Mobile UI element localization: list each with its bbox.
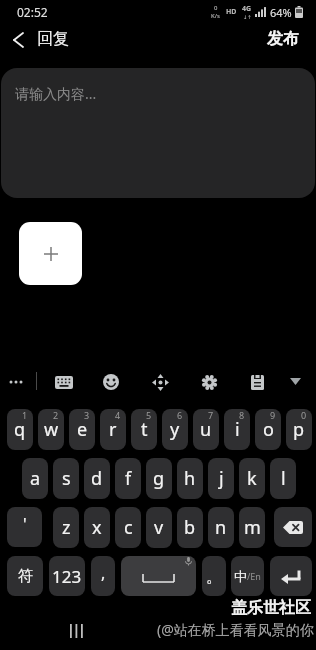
staticText: t [141,417,148,442]
staticText: 02:52 [17,4,48,20]
staticText: 符 [18,567,33,586]
staticText: k [247,466,257,491]
staticText: 请输入内容... [15,84,97,103]
button[interactable]: f [115,458,141,499]
staticText: , [101,562,106,584]
staticText: HD [226,7,237,17]
staticText: f [125,466,132,491]
staticText: 64% [270,5,292,20]
staticText: 7 [208,409,214,421]
button[interactable]: c [115,507,141,548]
button[interactable]: o [255,409,281,450]
staticText: c [124,515,133,540]
button[interactable]: z [53,507,79,548]
staticText: /En [247,570,261,582]
button[interactable]: n [208,507,234,548]
button[interactable] [99,370,123,394]
staticText: b [184,515,196,540]
button[interactable]: w [38,409,64,450]
staticText: w [44,417,59,442]
button[interactable]: g [146,458,172,499]
staticText: x [92,515,102,540]
button[interactable]: x [84,507,110,548]
staticText: ' [23,513,27,535]
staticText: 123 [52,565,82,588]
button[interactable] [19,222,82,285]
staticText: u [200,417,212,442]
staticText: 9 [270,409,276,421]
button[interactable]: m [239,507,265,548]
staticText: 4 [115,409,121,421]
button[interactable] [121,556,196,596]
staticText: z [62,515,71,540]
staticText: s [62,466,71,491]
button[interactable] [52,370,76,394]
staticText: m [244,515,261,540]
staticText: j [219,466,224,491]
staticText: n [215,515,227,540]
staticText: 1 [22,409,28,421]
staticText: 6 [177,409,183,421]
button[interactable]: s [53,458,79,499]
button[interactable]: k [239,458,265,499]
button[interactable]: y [162,409,188,450]
staticText: 0 [301,409,307,421]
staticText: 5 [146,409,152,421]
button[interactable]: 符 [7,556,43,596]
staticText: 中 [234,568,247,584]
button[interactable]: t [131,409,157,450]
staticText: 0 [214,4,218,12]
button[interactable]: l [270,458,296,499]
staticText: a [30,466,41,491]
button[interactable]: u [193,409,219,450]
button[interactable]: j [208,458,234,499]
button[interactable]: e [69,409,95,450]
button[interactable]: 。 [202,556,226,596]
button[interactable] [284,370,306,392]
button[interactable]: v [146,507,172,548]
button[interactable]: 123 [49,556,85,596]
button[interactable]: q [7,409,33,450]
staticText: (@站在桥上看看风景的你 [157,620,314,639]
staticText: 回复 [37,29,69,49]
staticText: h [184,466,196,491]
staticText: 发布 [267,29,299,49]
button[interactable]: 中 [231,556,264,596]
staticText: o [263,417,274,442]
button[interactable] [148,370,172,394]
staticText: 3 [84,409,90,421]
button[interactable]: d [84,458,110,499]
button[interactable] [245,370,269,394]
button[interactable]: 发布 [267,29,299,49]
staticText: p [293,417,305,442]
button[interactable] [270,556,312,596]
button[interactable]: a [22,458,48,499]
button[interactable]: r [100,409,126,450]
button[interactable]: h [177,458,203,499]
staticText: e [77,417,88,442]
staticText: 盖乐世社区 [231,598,311,618]
staticText: g [153,466,165,491]
button[interactable] [4,370,28,394]
staticText: K/s [211,12,220,20]
button[interactable]: , [91,556,115,596]
staticText: ↓↑ [243,14,252,20]
button[interactable]: 请输入内容... [1,68,315,198]
staticText: 8 [239,409,245,421]
button[interactable] [5,27,31,53]
staticText: v [154,515,164,540]
staticText: i [235,417,240,442]
button[interactable]: p [286,409,312,450]
button[interactable]: ' [7,507,42,547]
button[interactable] [197,370,221,394]
staticText: 4G [242,4,252,14]
staticText: r [109,417,117,442]
staticText: 2 [53,409,59,421]
staticText: l [281,466,286,491]
staticText: q [14,417,26,442]
staticText: d [91,466,103,491]
button[interactable] [274,507,312,547]
button[interactable]: i [224,409,250,450]
staticText: 。 [206,566,223,587]
button[interactable]: b [177,507,203,548]
